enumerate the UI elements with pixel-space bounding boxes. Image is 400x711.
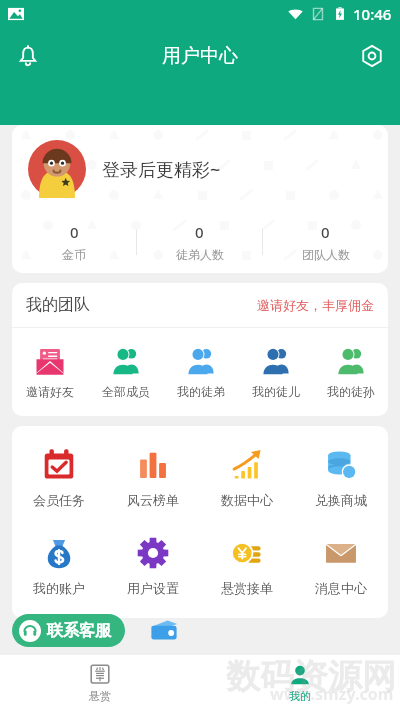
- staticText: 我的徒儿: [252, 384, 300, 399]
- staticText: 我的: [289, 689, 311, 703]
- button[interactable]: 悬赏接单: [200, 522, 294, 610]
- button[interactable]: Notifications: [6, 34, 50, 78]
- staticText: 徒弟人数: [176, 247, 224, 262]
- button[interactable]: 全部成员: [88, 328, 163, 416]
- staticText: 悬赏接单: [221, 580, 273, 596]
- staticText: 0: [70, 222, 79, 242]
- staticText: 兑换商城: [315, 492, 367, 508]
- staticText: 悬赏: [89, 689, 111, 703]
- staticText: 0: [195, 222, 204, 242]
- staticText: 我的徒弟: [177, 384, 225, 399]
- button[interactable]: 0: [263, 213, 388, 271]
- button[interactable]: 我的账户: [12, 522, 106, 610]
- staticText: 用户中心: [162, 44, 238, 68]
- button[interactable]: 0: [137, 213, 262, 271]
- staticText: 全部成员: [102, 384, 150, 399]
- staticText: 我的账户: [33, 580, 85, 596]
- button[interactable]: 用户设置: [106, 522, 200, 610]
- staticText: 登录后更精彩~: [102, 157, 221, 182]
- button[interactable]: 我的: [200, 655, 400, 711]
- button[interactable]: 联系客服: [12, 614, 125, 647]
- staticText: 团队人数: [302, 247, 350, 262]
- staticText: 风云榜单: [127, 492, 179, 508]
- button[interactable]: Wallet: [148, 614, 180, 646]
- staticText: 会员任务: [33, 492, 85, 508]
- staticText: 金币: [62, 247, 86, 262]
- staticText: 用户设置: [127, 580, 179, 596]
- button[interactable]: 数据中心: [200, 434, 294, 522]
- staticText: 数码资源网: [226, 655, 396, 698]
- button[interactable]: 悬赏: [0, 655, 200, 711]
- button[interactable]: 我的团队: [12, 283, 388, 327]
- button[interactable]: 邀请好友: [12, 328, 88, 416]
- staticText: 10:46: [353, 4, 392, 24]
- button[interactable]: 我的徒儿: [238, 328, 313, 416]
- staticText: 联系客服: [47, 621, 111, 641]
- staticText: 数据中心: [221, 492, 273, 508]
- button[interactable]: 风云榜单: [106, 434, 200, 522]
- button[interactable]: 会员任务: [12, 434, 106, 522]
- button[interactable]: 我的徒弟: [163, 328, 238, 416]
- button[interactable]: 兑换商城: [294, 434, 388, 522]
- staticText: 我的徒孙: [327, 384, 375, 399]
- staticText: 邀请好友，丰厚佣金: [257, 297, 374, 313]
- button[interactable]: 0: [12, 213, 136, 271]
- button[interactable]: 消息中心: [294, 522, 388, 610]
- button[interactable]: Settings: [350, 34, 394, 78]
- staticText: www.smzy.com: [270, 683, 394, 705]
- staticText: 0: [321, 222, 330, 242]
- staticText: 消息中心: [315, 580, 367, 596]
- button[interactable]: 我的徒孙: [313, 328, 388, 416]
- staticText: 邀请好友: [26, 384, 74, 399]
- button[interactable]: 登录后更精彩~: [12, 125, 388, 273]
- staticText: 我的团队: [26, 295, 90, 315]
